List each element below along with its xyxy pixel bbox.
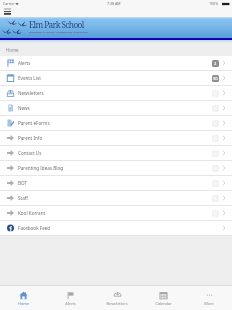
- staticText: 100%: [209, 1, 219, 6]
- staticText: Newsletters: [106, 301, 128, 306]
- button[interactable]: Kool Korrant: [0, 206, 232, 221]
- staticText: Events List: [18, 75, 41, 81]
- button[interactable]: Events List: [0, 71, 232, 86]
- staticText: Newsletters: [18, 90, 44, 96]
- button[interactable]: Calendar: [140, 286, 186, 310]
- button[interactable]: Parent Info: [0, 131, 232, 146]
- staticText: Carrier: [3, 1, 15, 6]
- button[interactable]: Menu: [4, 8, 11, 15]
- staticText: Elm Park School: [29, 19, 84, 30]
- button[interactable]: Parenting Ideas Blog: [0, 161, 232, 176]
- button[interactable]: Alerts: [0, 56, 232, 71]
- staticText: Parent eForms: [18, 120, 50, 126]
- button[interactable]: More: [186, 286, 232, 310]
- staticText: Calendar: [155, 301, 172, 306]
- staticText: Home: [6, 47, 19, 53]
- staticText: BOT: [18, 180, 27, 186]
- button[interactable]: BOT: [0, 176, 232, 191]
- staticText: More: [204, 301, 214, 306]
- staticText: Contact Us: [18, 150, 42, 156]
- staticText: Empowering all learners to achieve their…: [29, 31, 88, 34]
- staticText: Parent Info: [18, 135, 43, 141]
- button[interactable]: Newsletters: [94, 286, 140, 310]
- staticText: 7:38 AM: [107, 1, 121, 6]
- staticText: Kool Korrant: [18, 210, 46, 216]
- staticText: Facebook Feed: [18, 225, 51, 231]
- staticText: 2: [214, 61, 217, 66]
- button[interactable]: Parent eForms: [0, 116, 232, 131]
- button[interactable]: Newsletters: [0, 86, 232, 101]
- button[interactable]: Contact Us: [0, 146, 232, 161]
- button[interactable]: Staff: [0, 191, 232, 206]
- staticText: News: [18, 105, 30, 111]
- button[interactable]: Facebook Feed: [0, 221, 232, 236]
- staticText: Alerts: [18, 60, 31, 66]
- staticText: Staff: [18, 195, 28, 201]
- staticText: Home: [18, 301, 29, 306]
- staticText: Parenting Ideas Blog: [18, 165, 64, 171]
- button[interactable]: Home: [0, 286, 47, 310]
- staticText: Alerts: [65, 301, 76, 306]
- staticText: 50: [213, 76, 218, 81]
- button[interactable]: News: [0, 101, 232, 116]
- button[interactable]: Alerts: [47, 286, 94, 310]
